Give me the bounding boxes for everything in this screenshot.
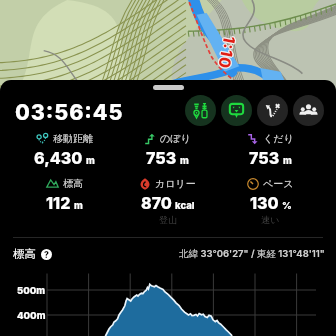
staticText: ? <box>44 250 49 260</box>
staticText: ペース <box>263 177 294 190</box>
staticText: 1:10 <box>215 35 240 71</box>
staticText: 1:10 <box>216 35 241 71</box>
staticText: 北緯 33°06'27" / 東経 131°48'11" <box>179 248 325 260</box>
staticText: 112 <box>46 193 71 212</box>
staticText: % <box>282 200 292 211</box>
staticText: 移動距離 <box>53 132 93 145</box>
staticText: m <box>74 200 83 211</box>
staticText: m <box>180 155 189 166</box>
staticText: m <box>283 155 292 166</box>
staticText: くだり <box>263 132 294 145</box>
staticText: 速い <box>261 214 280 225</box>
button[interactable]: Map layers <box>185 95 216 126</box>
button[interactable]: Members <box>293 95 324 126</box>
staticText: 400m <box>17 310 46 321</box>
staticText: 登山 <box>159 214 177 225</box>
button[interactable]: Clear route <box>257 95 288 126</box>
staticText: 753 <box>146 148 177 167</box>
button[interactable]: Chat <box>221 95 252 126</box>
staticText: 標高 <box>63 177 83 190</box>
staticText: 6,430 <box>34 148 83 167</box>
staticText: カロリー <box>155 177 196 190</box>
staticText: 130 <box>250 193 279 212</box>
staticText: kcal <box>175 200 195 211</box>
staticText: 870 <box>141 193 172 212</box>
staticText: 753 <box>249 148 280 167</box>
staticText: 03:56:45 <box>15 99 124 125</box>
staticText: のぼり <box>160 132 191 145</box>
staticText: 500m <box>17 285 46 296</box>
staticText: 標高 <box>13 247 36 261</box>
button[interactable]: Elevation help <box>13 247 52 261</box>
staticText: 1:10 <box>215 33 240 69</box>
staticText: m <box>86 155 95 166</box>
staticText: 1:10 <box>214 34 239 70</box>
staticText: 1:10 <box>215 34 240 70</box>
